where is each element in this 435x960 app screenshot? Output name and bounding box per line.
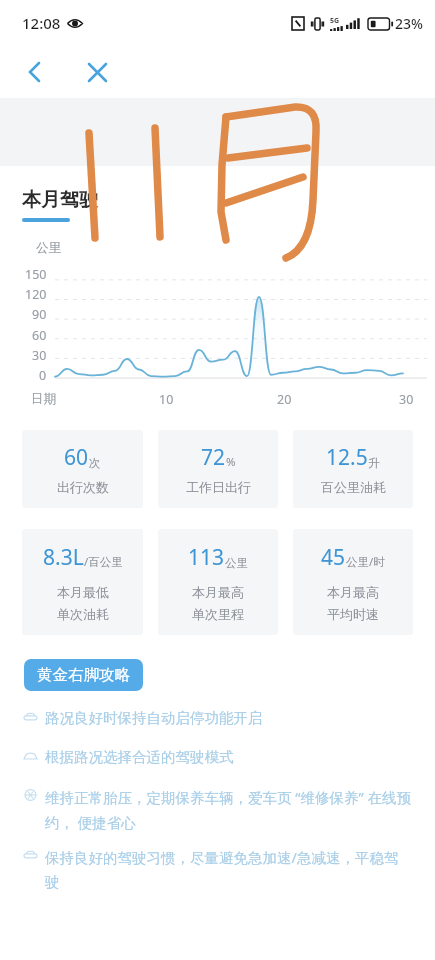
staticText: 黄金右脚攻略 xyxy=(37,665,130,685)
button[interactable]: 113 xyxy=(158,529,278,635)
staticText: 维持正常胎压，定期保养车辆，爱车页 “维修保养” 在线预约， 便捷省心 xyxy=(45,787,411,832)
staticText: 工作日出行 xyxy=(186,479,251,495)
staticText: 60 xyxy=(64,443,89,472)
staticText: 本月最低 xyxy=(57,584,109,600)
staticText: 113 xyxy=(188,543,225,572)
staticText: 12:08 xyxy=(22,13,61,33)
staticText: 单次里程 xyxy=(192,606,244,622)
staticText: 保持良好的驾驶习惯，尽量避免急加速/急减速，平稳驾驶 xyxy=(45,847,411,891)
staticText: 5G xyxy=(330,16,340,26)
staticText: 百公里油耗 xyxy=(321,479,386,495)
staticText: 次 xyxy=(89,456,101,470)
staticText: 平均时速 xyxy=(327,606,379,622)
staticText: 90 xyxy=(32,306,47,323)
button[interactable]: 72 xyxy=(158,430,278,508)
button[interactable]: 60 xyxy=(22,430,143,508)
staticText: 8.3L xyxy=(43,543,84,572)
staticText: 12.5 xyxy=(326,443,368,472)
staticText: 60 xyxy=(32,327,47,344)
button[interactable]: 黄金右脚攻略 xyxy=(24,659,143,691)
staticText: 150 xyxy=(25,266,47,283)
staticText: 公里 xyxy=(225,556,248,570)
staticText: 30 xyxy=(32,347,47,364)
staticText: 本月最高 xyxy=(192,584,244,600)
staticText: 根据路况选择合适的驾驶模式 xyxy=(45,748,234,766)
staticText: 路况良好时保持自动启停功能开启 xyxy=(45,709,263,727)
staticText: 45 xyxy=(321,543,346,572)
staticText: 23% xyxy=(395,14,423,33)
button[interactable]: Close xyxy=(75,50,119,94)
staticText: 30 xyxy=(399,391,414,408)
staticText: 单次油耗 xyxy=(57,606,109,622)
staticText: 升 xyxy=(368,456,380,470)
staticText: 公里 xyxy=(36,240,61,256)
button[interactable]: 45 xyxy=(293,529,413,635)
staticText: /百公里 xyxy=(84,554,123,570)
staticText: 120 xyxy=(25,286,47,303)
staticText: 出行次数 xyxy=(57,479,109,495)
staticText: 0 xyxy=(39,367,47,384)
staticText: 本月最高 xyxy=(327,584,379,600)
button[interactable]: Back xyxy=(12,50,56,94)
staticText: 公里/时 xyxy=(346,554,385,570)
staticText: 20 xyxy=(277,391,292,408)
staticText: 72 xyxy=(201,443,226,472)
staticText: % xyxy=(226,454,236,470)
staticText: 本月驾驶 xyxy=(22,188,98,212)
button[interactable]: 12.5 xyxy=(293,430,413,508)
button[interactable]: 8.3L xyxy=(22,529,143,635)
staticText: 10 xyxy=(159,391,174,408)
staticText: 日期 xyxy=(31,391,56,407)
